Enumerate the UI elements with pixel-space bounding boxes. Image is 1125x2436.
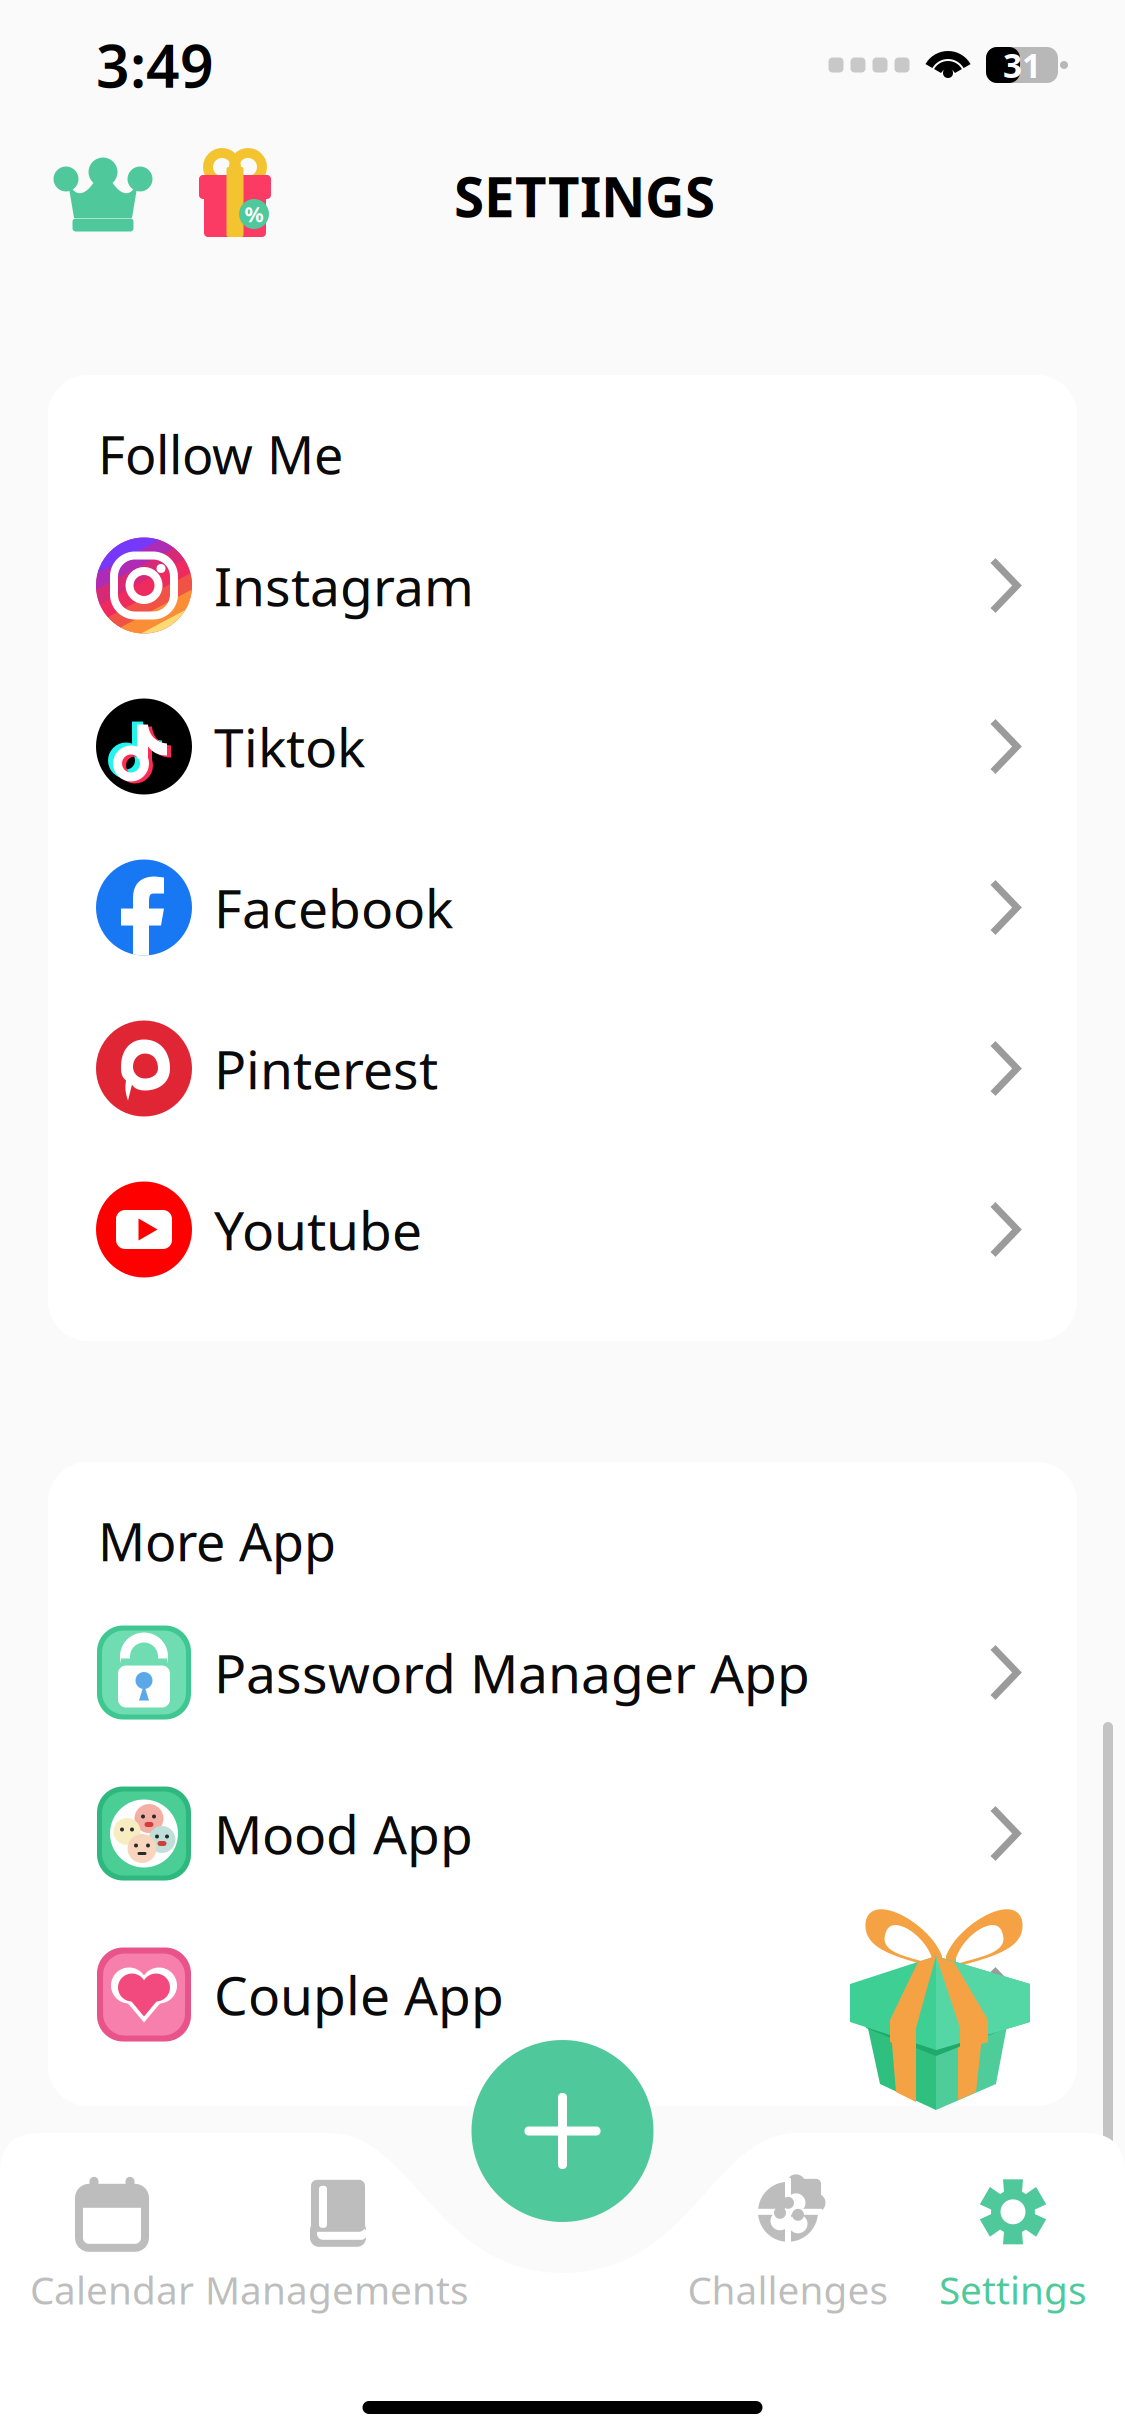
staticText: Mood App <box>214 1798 473 1869</box>
staticText: Pinterest <box>214 1033 438 1104</box>
staticText: Challenges <box>687 2264 888 2315</box>
button[interactable]: Settings <box>843 2164 1125 2324</box>
button[interactable]: Calendar <box>0 2164 282 2324</box>
staticText: Follow Me <box>98 419 343 489</box>
button[interactable]: Challenges <box>618 2164 958 2324</box>
button[interactable]: Password Manager App <box>48 1592 1077 1753</box>
button[interactable]: Youtube <box>48 1149 1077 1310</box>
staticText: Facebook <box>214 872 453 943</box>
staticText: Tiktok <box>214 711 365 782</box>
staticText: SETTINGS <box>454 160 715 232</box>
button[interactable]: Couple App <box>48 1914 1077 2075</box>
button[interactable]: Tiktok <box>48 666 1077 827</box>
button[interactable]: Add <box>471 2040 653 2222</box>
button[interactable]: Mood App <box>48 1753 1077 1914</box>
button[interactable]: Gift offers <box>192 153 278 239</box>
button[interactable]: Instagram <box>48 505 1077 666</box>
staticText: Couple App <box>214 1959 504 2030</box>
staticText: % <box>244 200 263 228</box>
staticText: 31 <box>1003 43 1041 87</box>
button[interactable]: Pinterest <box>48 988 1077 1149</box>
staticText: Calendar <box>30 2264 194 2315</box>
staticText: Password Manager App <box>214 1637 810 1708</box>
button[interactable]: Managements <box>167 2164 507 2324</box>
button[interactable]: Facebook <box>48 827 1077 988</box>
staticText: Instagram <box>214 550 474 621</box>
button[interactable]: Premium <box>60 156 146 236</box>
staticText: More App <box>98 1506 336 1576</box>
staticText: Managements <box>205 2264 469 2315</box>
staticText: Youtube <box>214 1194 422 1265</box>
staticText: 3:49 <box>96 26 214 104</box>
staticText: Settings <box>939 2264 1087 2315</box>
